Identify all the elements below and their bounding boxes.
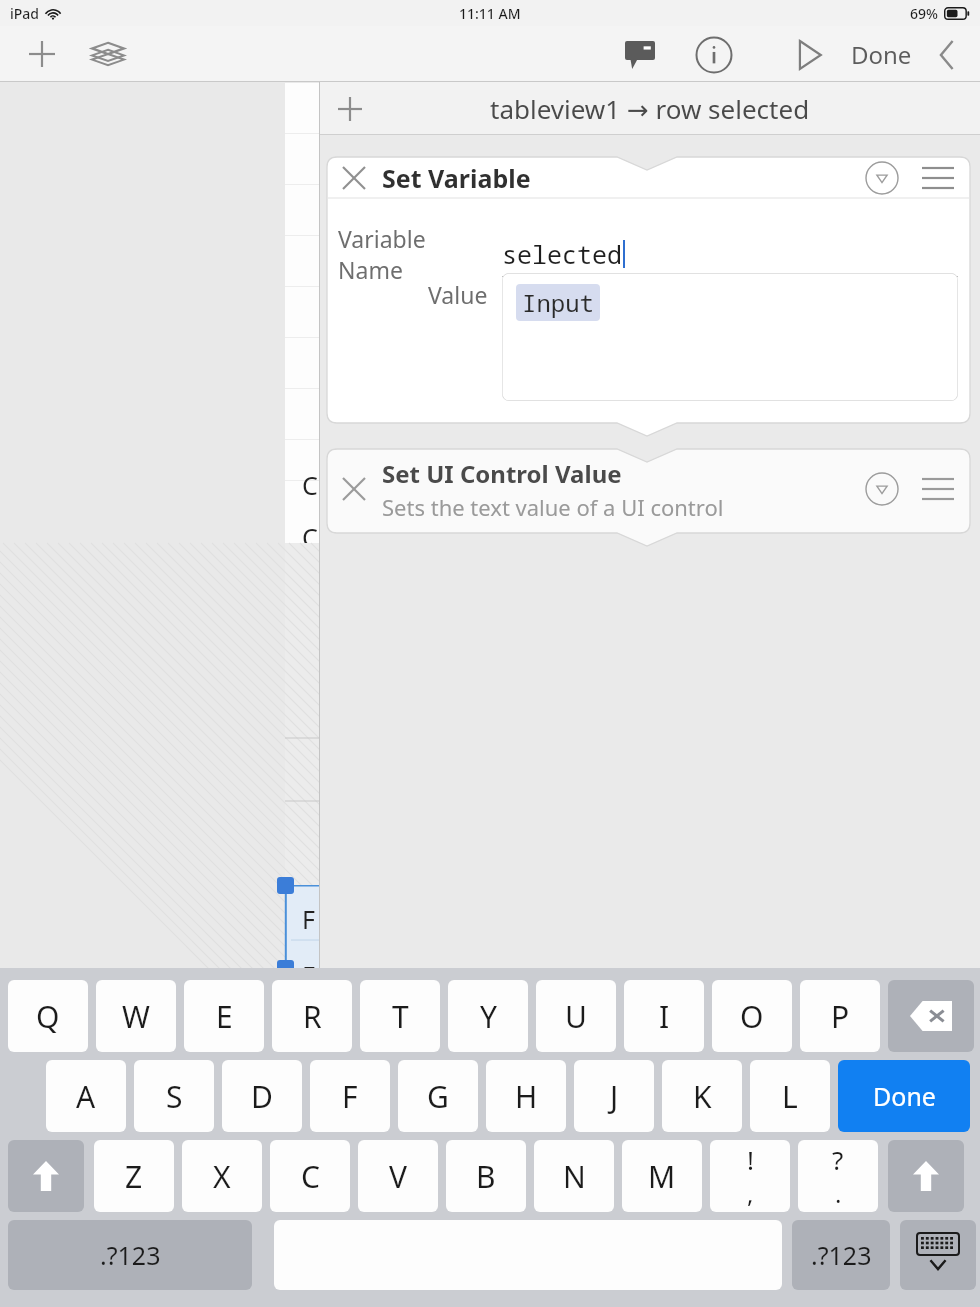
button[interactable]: Y	[448, 980, 528, 1052]
button[interactable]: M	[622, 1140, 702, 1212]
staticText: S	[166, 1076, 183, 1117]
button[interactable]: C	[302, 520, 318, 554]
staticText: P	[831, 996, 850, 1037]
staticText: B	[476, 1156, 496, 1197]
button[interactable]: Add	[20, 32, 64, 76]
staticText: C	[301, 1156, 320, 1197]
button[interactable]: A	[46, 1060, 126, 1132]
staticText: F	[342, 1076, 358, 1117]
button[interactable]: Input	[502, 273, 958, 401]
button[interactable]: T	[360, 980, 440, 1052]
staticText: X	[213, 1156, 231, 1197]
staticText: R	[303, 996, 322, 1037]
button[interactable]: E	[184, 980, 264, 1052]
button[interactable]: G	[398, 1060, 478, 1132]
staticText: N	[563, 1156, 586, 1197]
staticText: C	[302, 468, 318, 502]
button[interactable]: Backspace	[888, 980, 974, 1052]
staticText: T	[392, 996, 409, 1037]
button[interactable]: Shift	[888, 1140, 964, 1212]
button[interactable]: B	[446, 1140, 526, 1212]
button[interactable]: Reorder	[918, 158, 958, 198]
button[interactable]: Hide keyboard	[900, 1220, 976, 1290]
button[interactable]: R	[272, 980, 352, 1052]
staticText: C	[302, 571, 318, 605]
button[interactable]: Remove block	[334, 469, 374, 509]
button[interactable]: Done	[843, 30, 920, 79]
staticText: E	[216, 996, 233, 1037]
staticText: J	[610, 1076, 619, 1117]
button[interactable]: Layers	[86, 32, 130, 76]
staticText: F	[302, 902, 315, 936]
button[interactable]: selected	[502, 231, 958, 277]
staticText: V	[389, 1156, 407, 1197]
button[interactable]: Add block	[328, 87, 372, 131]
button[interactable]: Collapse	[862, 469, 902, 509]
button[interactable]: Run	[787, 32, 833, 78]
staticText: U	[565, 996, 587, 1037]
button[interactable]: Remove block	[334, 158, 374, 198]
staticText: 11:11 AM	[459, 4, 521, 23]
button[interactable]: Reorder	[918, 469, 958, 509]
button[interactable]: U	[536, 980, 616, 1052]
staticText: Z	[125, 1156, 143, 1197]
staticText: tableview1 → row selected	[490, 91, 810, 126]
staticText: .?123	[811, 1238, 872, 1272]
button[interactable]: ?	[798, 1140, 878, 1212]
staticText: 69%	[910, 4, 938, 23]
button[interactable]: N	[534, 1140, 614, 1212]
staticText: Sets the text value of a UI control	[382, 492, 724, 522]
button[interactable]: Collapse	[862, 158, 902, 198]
staticText: Set Variable	[382, 161, 531, 195]
button[interactable]: O	[712, 980, 792, 1052]
staticText: K	[693, 1076, 712, 1117]
button[interactable]: V	[358, 1140, 438, 1212]
staticText: Variable Name	[338, 223, 488, 285]
button[interactable]: Info	[691, 32, 737, 78]
button[interactable]: Z	[94, 1140, 174, 1212]
staticText: F	[302, 958, 315, 992]
button[interactable]: Comments	[617, 32, 663, 78]
button[interactable]: Back	[926, 34, 968, 76]
staticText: F	[302, 1015, 315, 1049]
button[interactable]: !	[710, 1140, 790, 1212]
button[interactable]: Done	[838, 1060, 970, 1132]
staticText: G	[427, 1076, 449, 1117]
button[interactable]: H	[486, 1060, 566, 1132]
button[interactable]: P	[800, 980, 880, 1052]
staticText: selected	[502, 237, 623, 271]
button[interactable]: J	[574, 1060, 654, 1132]
staticText: Done	[851, 38, 912, 71]
button[interactable]: C	[302, 468, 318, 502]
staticText: Y	[480, 996, 497, 1037]
staticText: A	[76, 1076, 96, 1117]
button[interactable]: K	[662, 1060, 742, 1132]
button[interactable]: S	[134, 1060, 214, 1132]
button[interactable]: C	[270, 1140, 350, 1212]
staticText: .	[835, 1177, 842, 1210]
staticText: O	[740, 996, 764, 1037]
button[interactable]: Shift	[8, 1140, 84, 1212]
button[interactable]: F	[310, 1060, 390, 1132]
staticText: iPad	[10, 4, 40, 23]
button[interactable]: .?123	[8, 1220, 252, 1290]
staticText: I	[659, 996, 670, 1037]
staticText: M	[648, 1156, 676, 1197]
staticText: Done	[873, 1079, 936, 1113]
button[interactable]: I	[624, 980, 704, 1052]
staticText: L	[782, 1076, 798, 1117]
button[interactable]: Selected view	[285, 885, 319, 1047]
staticText: Set UI Control Value	[382, 457, 622, 490]
staticText: H	[515, 1076, 538, 1117]
button[interactable]: D	[222, 1060, 302, 1132]
button[interactable]: C	[302, 571, 318, 605]
button[interactable]: .?123	[792, 1220, 890, 1290]
staticText: C	[302, 520, 318, 554]
staticText: ?	[832, 1142, 844, 1177]
button[interactable]: W	[96, 980, 176, 1052]
staticText: .?123	[100, 1238, 161, 1272]
button[interactable]: Q	[8, 980, 88, 1052]
button[interactable]: X	[182, 1140, 262, 1212]
button[interactable]: L	[750, 1060, 830, 1132]
